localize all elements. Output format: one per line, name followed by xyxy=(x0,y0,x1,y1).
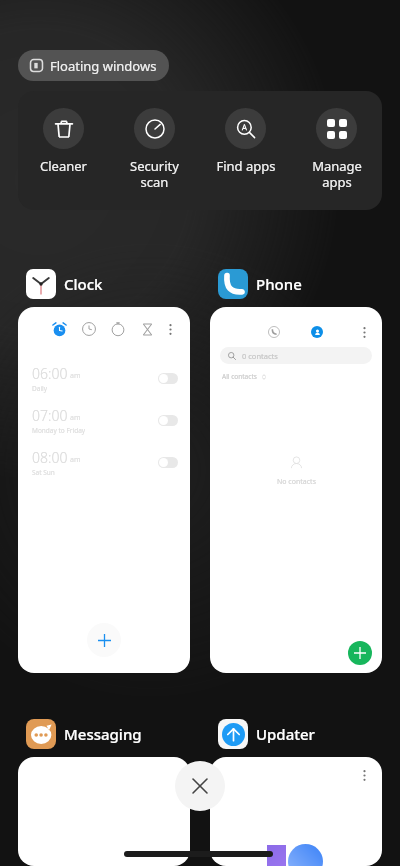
staticText: Security scan xyxy=(130,157,179,190)
button[interactable]: Recents xyxy=(210,307,382,673)
staticText: 08:00 xyxy=(32,448,68,467)
button[interactable]: Messaging xyxy=(26,719,142,749)
staticText: Updater xyxy=(256,724,315,744)
staticText: Floating windows xyxy=(50,57,157,75)
button[interactable]: Clock xyxy=(26,269,103,299)
staticText: 07:00 xyxy=(32,406,68,425)
button[interactable]: Phone xyxy=(218,269,302,299)
button[interactable]: More options xyxy=(164,323,177,336)
button[interactable]: Toggle alarm xyxy=(158,457,178,468)
button[interactable]: Floating windows xyxy=(18,50,169,81)
button[interactable]: Recents xyxy=(268,326,280,338)
button[interactable]: Manage apps xyxy=(291,91,382,210)
button[interactable]: Add alarm xyxy=(87,623,121,657)
staticText: Cleaner xyxy=(40,157,87,175)
staticText: am xyxy=(70,371,81,381)
button[interactable]: Contacts xyxy=(311,326,323,338)
staticText: Manage apps xyxy=(312,157,362,190)
button[interactable]: Toggle alarm xyxy=(158,373,178,384)
button[interactable]: Close all xyxy=(175,761,225,811)
staticText: Daily xyxy=(32,384,48,393)
staticText: Sat Sun xyxy=(32,468,55,477)
staticText: am xyxy=(70,413,81,423)
staticText: Messaging xyxy=(64,724,142,744)
staticText: Find apps xyxy=(216,157,276,175)
staticText: All contacts xyxy=(222,372,257,381)
button[interactable]: Toggle alarm xyxy=(158,415,178,426)
staticText: 0 contacts xyxy=(242,351,278,361)
staticText: am xyxy=(70,455,81,465)
staticText: Phone xyxy=(256,274,302,294)
staticText: Clock xyxy=(64,274,103,294)
button[interactable]: Security scan xyxy=(109,91,200,210)
staticText: Monday to Friday xyxy=(32,426,86,435)
button[interactable] xyxy=(18,757,190,866)
button[interactable]: More options xyxy=(18,307,190,673)
button[interactable]: Cleaner xyxy=(18,91,109,210)
button[interactable]: Add contact xyxy=(348,641,372,665)
button[interactable]: 0 contacts xyxy=(220,347,372,364)
staticText: 06:00 xyxy=(32,364,68,383)
staticText: No contacts xyxy=(277,477,316,487)
button[interactable]: Updater xyxy=(218,719,315,749)
button[interactable]: More options xyxy=(210,757,382,866)
button[interactable]: More options xyxy=(358,769,371,782)
button[interactable]: Find apps xyxy=(200,91,291,210)
